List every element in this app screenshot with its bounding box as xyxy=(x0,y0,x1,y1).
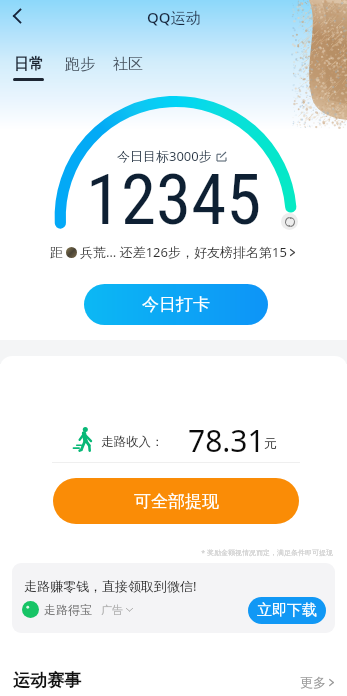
staticText: 元 xyxy=(264,435,277,451)
staticText: 距 xyxy=(50,244,63,260)
button[interactable]: Refresh xyxy=(281,213,298,230)
staticText: 可全部提现 xyxy=(134,491,219,512)
button[interactable]: 更多 xyxy=(300,674,336,690)
staticText: 运动赛事 xyxy=(13,670,81,691)
staticText: * 奖励金额视情况而定，满足条件即可提现 xyxy=(0,548,333,558)
staticText: QQ运动 xyxy=(147,7,201,27)
staticText: 社区 xyxy=(113,55,143,74)
button[interactable]: 社区 xyxy=(113,55,143,78)
button[interactable]: 立即下载 xyxy=(248,597,326,624)
button[interactable]: 距 xyxy=(50,243,297,261)
staticText: 78.31 xyxy=(188,420,265,461)
staticText: 今日目标3000步 xyxy=(117,147,212,165)
staticText: 跑步 xyxy=(65,55,95,74)
button[interactable]: Back xyxy=(3,2,30,29)
staticText: 兵荒… 还差126步，好友榜排名第15 xyxy=(80,243,287,261)
button[interactable]: 走路赚零钱，直接领取到微信! xyxy=(12,563,335,633)
staticText: 更多 xyxy=(300,674,326,690)
button[interactable]: 日常 xyxy=(13,55,44,81)
staticText: 今日打卡 xyxy=(142,294,210,315)
button[interactable]: 今日目标3000步 xyxy=(117,147,226,165)
button[interactable]: 跑步 xyxy=(65,55,95,78)
button[interactable]: 可全部提现 xyxy=(53,478,299,524)
staticText: 日常 xyxy=(14,55,44,74)
staticText: 走路得宝 xyxy=(44,602,92,617)
staticText: 走路赚零钱，直接领取到微信! xyxy=(24,577,197,595)
staticText: 12345 xyxy=(86,158,262,241)
button[interactable]: 今日打卡 xyxy=(84,284,268,325)
staticText: 广告 xyxy=(101,603,123,617)
staticText: 走路收入： xyxy=(101,434,164,450)
staticText: 立即下载 xyxy=(257,601,317,620)
